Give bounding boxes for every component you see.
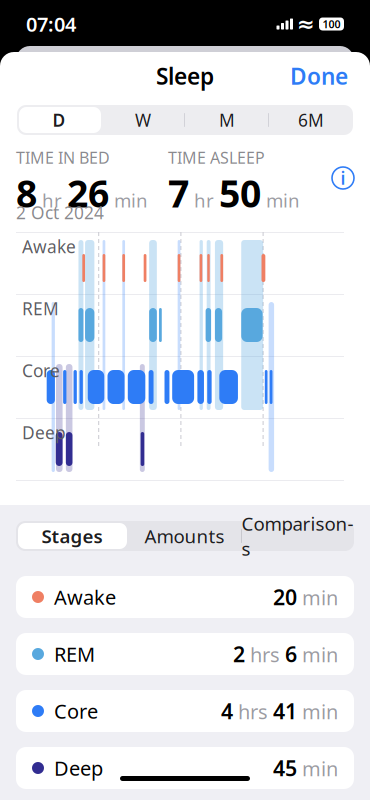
staticText: 50 [219,168,261,218]
staticText: min [297,755,338,782]
button[interactable]: Deep [16,747,354,789]
staticText: min [297,584,338,611]
button[interactable]: M [185,105,269,135]
button[interactable]: About sleep stages [328,163,358,193]
staticText: Core [54,698,98,724]
button[interactable]: Amounts [128,521,241,551]
staticText: i [340,166,345,189]
button[interactable]: Done [280,55,358,97]
staticText: TIME IN BED [16,147,110,168]
staticText: 45 [273,754,297,782]
staticText: M [219,108,235,131]
button[interactable]: Stages [16,521,128,551]
staticText: Awake [22,235,76,258]
staticText: 2 Oct 2024 [16,201,104,224]
staticText: 6 [285,640,297,668]
staticText: Deep [54,755,103,781]
staticText: hr [189,188,219,213]
staticText: REM [22,297,59,320]
staticText: 100 [322,17,340,31]
staticText: 2 [233,640,245,668]
staticText: Stages [41,524,102,548]
staticText: Deep [22,421,66,444]
button[interactable]: Comparisons [241,521,354,551]
staticText: hr [37,188,67,213]
staticText: min [297,698,338,725]
staticText: Comparisons [241,511,353,561]
staticText: D [52,108,65,131]
staticText: hrs [245,641,285,668]
button[interactable]: D [17,105,101,135]
staticText: min [109,188,148,213]
staticText: ≈ [297,12,315,36]
button[interactable]: W [101,105,185,135]
staticText: 4 [221,697,233,725]
staticText: W [135,108,151,131]
staticText: min [297,641,338,668]
staticText: 7 [168,168,189,218]
button[interactable]: REM [16,633,354,675]
staticText: REM [54,641,95,667]
staticText: 20 [273,583,297,611]
staticText: 41 [273,697,297,725]
staticText: Core [22,359,60,382]
button[interactable]: 6M [269,105,353,135]
staticText: Awake [54,584,116,610]
button[interactable]: Awake [16,576,354,618]
staticText: Amounts [144,524,224,548]
staticText: 07:04 [26,11,76,37]
staticText: TIME ASLEEP [168,147,265,168]
button[interactable]: Core [16,690,354,732]
staticText: 8 [16,168,37,218]
staticText: Sleep [156,61,214,91]
staticText: hrs [233,698,273,725]
staticText: Done [290,61,348,91]
staticText: min [261,188,300,213]
staticText: 6M [298,108,324,131]
staticText: 26 [67,168,109,218]
